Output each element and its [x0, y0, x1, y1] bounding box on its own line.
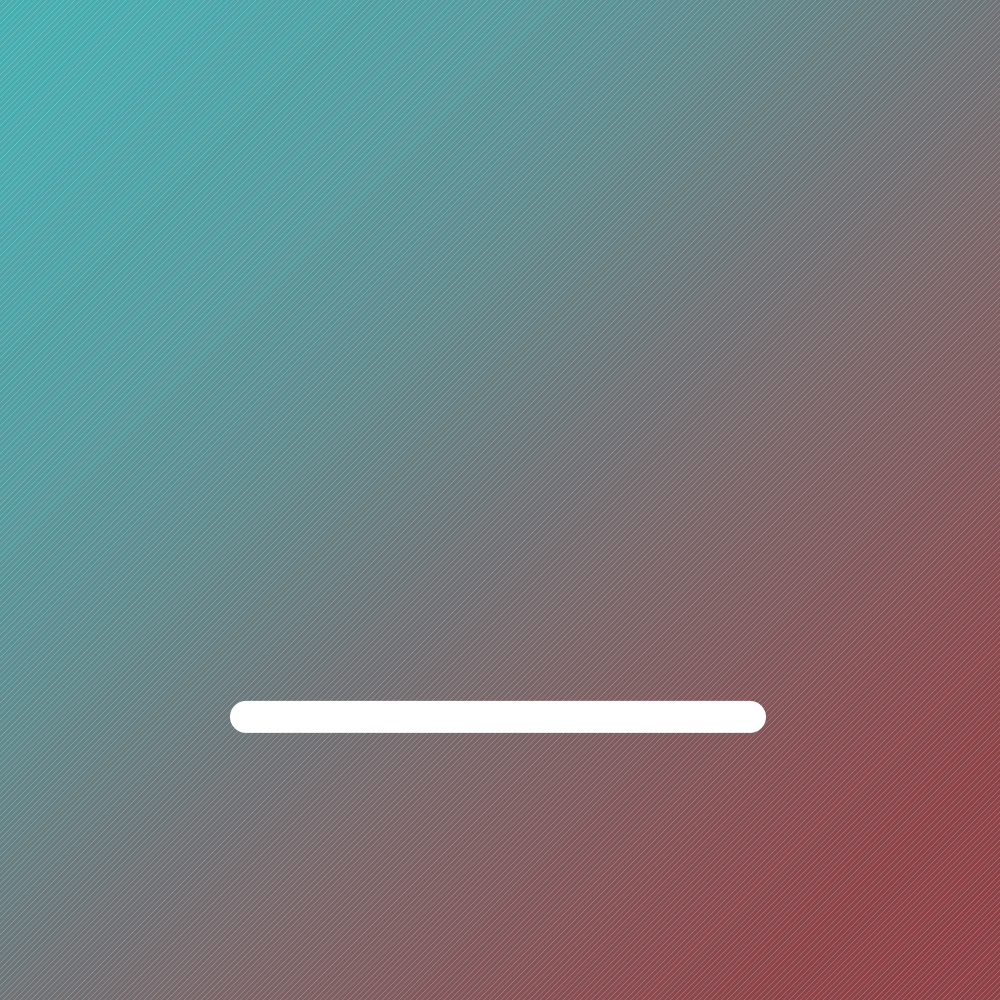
button[interactable]: Continue [230, 701, 766, 733]
